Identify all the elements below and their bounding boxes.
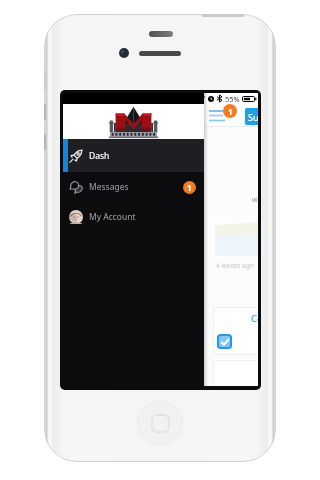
staticText: 55%	[225, 94, 240, 104]
button[interactable]: Dash	[63, 139, 204, 172]
staticText: Messages	[89, 181, 129, 193]
button[interactable]: Messages	[63, 172, 204, 202]
button[interactable]: Task completed checkbox	[217, 334, 232, 349]
staticText: w	[252, 195, 258, 205]
staticText: Dash	[89, 150, 110, 162]
button[interactable]: My Account	[63, 202, 204, 232]
button[interactable]: Open navigation menu	[206, 106, 226, 124]
button[interactable]: Sup	[245, 108, 258, 125]
staticText: 4 weeks ago	[216, 261, 254, 270]
staticText: Sup	[248, 111, 258, 123]
staticText: Co	[251, 312, 258, 325]
staticText: 1	[228, 106, 233, 117]
staticText: My Account	[89, 211, 136, 223]
staticText: 1	[187, 182, 192, 193]
button[interactable]: 1 notification	[223, 104, 237, 118]
